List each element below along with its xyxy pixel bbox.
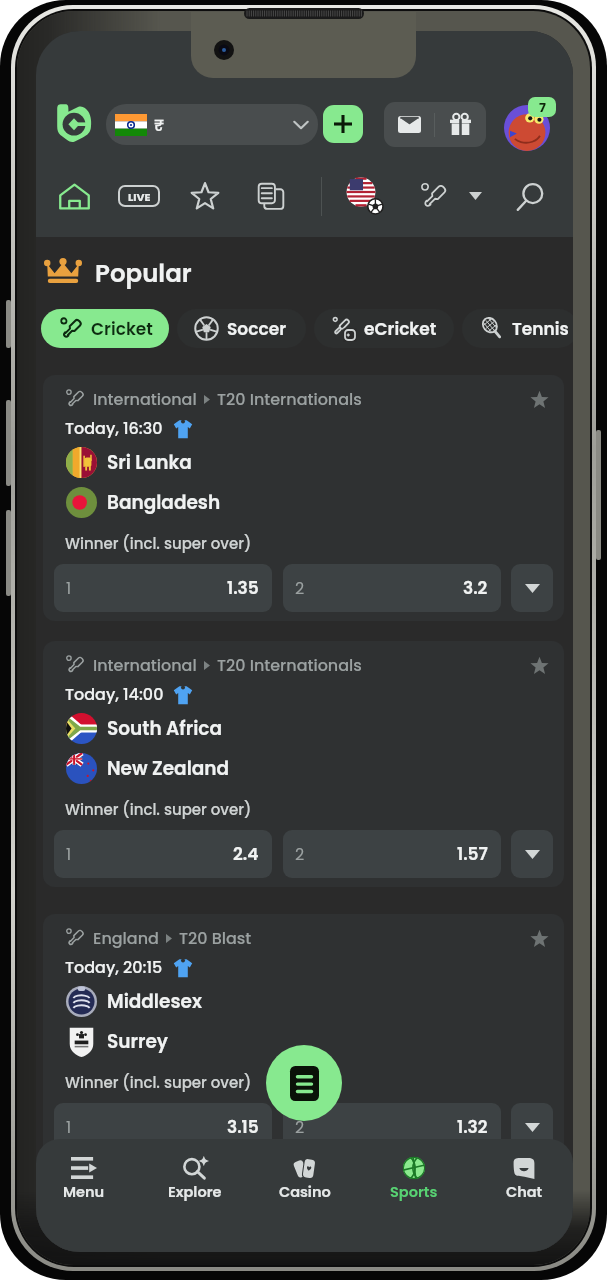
- staticText: Casino: [279, 1182, 331, 1202]
- staticText: Soccer: [227, 317, 287, 341]
- button[interactable]: Sports: [369, 1145, 459, 1217]
- button[interactable]: 2: [283, 564, 501, 612]
- staticText: 1: [66, 577, 72, 599]
- staticText: Menu: [63, 1182, 105, 1202]
- staticText: 3.15: [227, 1115, 259, 1139]
- button[interactable]: Casino: [260, 1145, 350, 1217]
- staticText: New Zealand: [107, 756, 230, 782]
- staticText: 3.2: [463, 576, 488, 600]
- button[interactable]: Search: [510, 176, 550, 216]
- staticText: 2: [295, 843, 305, 865]
- staticText: 1: [66, 1116, 72, 1138]
- staticText: 1: [66, 843, 72, 865]
- button[interactable]: 2: [283, 1103, 501, 1151]
- staticText: 1.32: [457, 1115, 488, 1139]
- staticText: 1.35: [227, 576, 259, 600]
- staticText: Explore: [168, 1182, 222, 1202]
- staticText: Sri Lanka: [107, 450, 192, 476]
- staticText: eCricket: [364, 317, 437, 341]
- staticText: Popular: [95, 256, 192, 290]
- button[interactable]: Select sport: [455, 176, 495, 216]
- staticText: 7: [539, 98, 546, 116]
- button[interactable]: Bet slip: [266, 1045, 342, 1121]
- button[interactable]: eCricket: [314, 309, 454, 348]
- button[interactable]: International: [43, 641, 564, 887]
- button[interactable]: Cricket: [41, 309, 169, 348]
- staticText: Bangladesh: [107, 490, 221, 516]
- button[interactable]: International: [43, 375, 564, 621]
- button[interactable]: Soccer: [177, 309, 306, 348]
- button[interactable]: My bets: [251, 176, 291, 216]
- button[interactable]: Tennis: [462, 309, 573, 348]
- staticText: Cricket: [91, 317, 153, 341]
- staticText: T20 Internationals: [217, 388, 362, 410]
- staticText: LIVE: [128, 189, 151, 204]
- button[interactable]: 2: [283, 830, 501, 878]
- button[interactable]: Profile: [502, 98, 554, 150]
- staticText: ₹: [154, 114, 164, 136]
- staticText: International: [93, 388, 197, 410]
- staticText: Winner (incl. super over): [65, 799, 252, 820]
- staticText: 2: [295, 1116, 305, 1138]
- staticText: South Africa: [107, 716, 223, 742]
- button[interactable]: Home: [54, 176, 94, 216]
- staticText: 2.4: [233, 842, 259, 866]
- staticText: Tennis: [512, 317, 569, 341]
- button[interactable]: More markets: [511, 564, 553, 612]
- staticText: Today, 20:15: [65, 956, 163, 978]
- staticText: Chat: [506, 1182, 543, 1202]
- button[interactable]: Sport: [413, 176, 453, 216]
- staticText: Surrey: [107, 1029, 169, 1055]
- button[interactable]: Deposit: [323, 105, 363, 143]
- button[interactable]: England: [43, 914, 564, 1160]
- button[interactable]: 1: [54, 1103, 272, 1151]
- staticText: Winner (incl. super over): [65, 1072, 252, 1093]
- button[interactable]: Region: [345, 176, 385, 216]
- button[interactable]: Promotions: [435, 102, 486, 147]
- staticText: Today, 16:30: [65, 417, 163, 439]
- staticText: 1.57: [457, 842, 488, 866]
- staticText: 2: [295, 577, 305, 599]
- staticText: Sports: [390, 1182, 438, 1202]
- button[interactable]: 1: [54, 830, 272, 878]
- staticText: England: [93, 927, 159, 949]
- button[interactable]: More markets: [511, 1103, 553, 1151]
- staticText: Winner (incl. super over): [65, 533, 252, 554]
- button[interactable]: Home: [52, 101, 96, 145]
- button[interactable]: Chat: [479, 1145, 569, 1217]
- button[interactable]: ₹: [106, 104, 318, 145]
- button[interactable]: Messages: [384, 102, 434, 147]
- button[interactable]: Favourites: [185, 176, 225, 216]
- staticText: International: [93, 654, 197, 676]
- button[interactable]: More markets: [511, 830, 553, 878]
- button[interactable]: Explore: [150, 1145, 240, 1217]
- staticText: T20 Blast: [179, 927, 252, 949]
- staticText: Today, 14:00: [65, 683, 164, 705]
- staticText: Middlesex: [107, 989, 202, 1015]
- button[interactable]: 1: [54, 564, 272, 612]
- button[interactable]: Live: [119, 176, 159, 216]
- staticText: T20 Internationals: [217, 654, 362, 676]
- button[interactable]: Menu: [39, 1145, 129, 1217]
